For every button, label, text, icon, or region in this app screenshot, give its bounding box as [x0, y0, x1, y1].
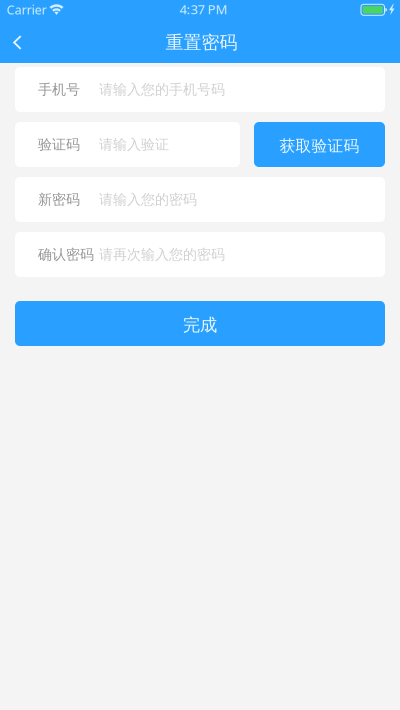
staticText: Carrier: [6, 1, 46, 18]
staticText: 验证码: [38, 136, 80, 153]
button[interactable]: 新密码: [15, 177, 385, 222]
staticText: 新密码: [38, 191, 80, 208]
button[interactable]: Back: [1, 22, 33, 63]
staticText: 完成: [183, 314, 217, 336]
button[interactable]: 完成: [15, 301, 385, 346]
staticText: 4:37 PM: [179, 0, 227, 18]
staticText: 获取验证码: [279, 136, 359, 156]
button[interactable]: 手机号: [15, 67, 385, 112]
staticText: 确认密码: [38, 246, 94, 263]
staticText: 手机号: [38, 81, 80, 98]
button[interactable]: 获取验证码: [254, 122, 385, 167]
button[interactable]: 验证码: [15, 122, 240, 167]
staticText: 请输入您的密码: [99, 191, 197, 208]
staticText: 重置密码: [165, 31, 237, 54]
staticText: 请输入您的手机号码: [99, 81, 225, 98]
button[interactable]: 确认密码: [15, 232, 385, 277]
staticText: 请再次输入您的密码: [99, 246, 225, 263]
staticText: 请输入验证: [99, 136, 169, 153]
